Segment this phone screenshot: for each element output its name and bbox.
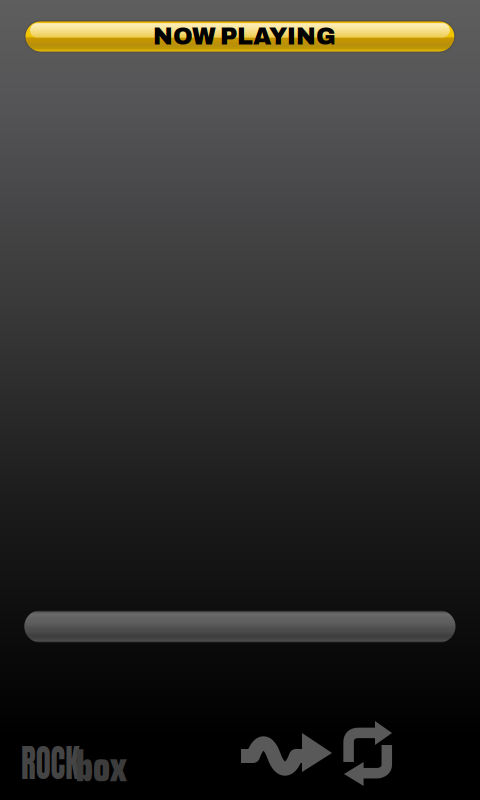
staticText: ROCK xyxy=(15,735,87,791)
staticText: NOW PLAYING xyxy=(153,23,336,49)
button[interactable]: NOW PLAYING xyxy=(24,20,455,53)
staticText: box xyxy=(73,734,128,799)
